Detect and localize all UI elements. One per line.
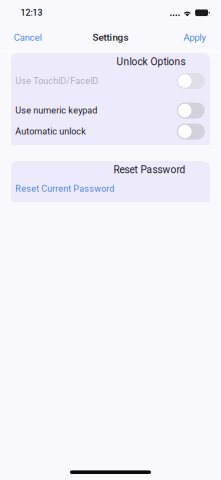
button[interactable]: Cancel: [9, 27, 47, 48]
button[interactable]: Automatic unlock: [11, 121, 210, 142]
staticText: Use TouchID/FaceID: [15, 76, 98, 86]
staticText: Unlock Options: [116, 56, 185, 68]
button[interactable]: Reset Current Password: [11, 178, 210, 199]
staticText: Reset Password: [113, 164, 185, 176]
button[interactable]: Use TouchID/FaceID: [11, 70, 210, 91]
staticText: Use numeric keypad: [15, 105, 97, 116]
staticText: Cancel: [14, 32, 42, 43]
staticText: Reset Current Password: [15, 183, 114, 194]
staticText: Automatic unlock: [15, 126, 86, 137]
button[interactable]: Use numeric keypad: [11, 100, 210, 121]
button[interactable]: Apply: [178, 27, 210, 48]
staticText: 12:13: [20, 8, 42, 18]
staticText: Apply: [183, 32, 205, 43]
staticText: Settings: [92, 32, 128, 43]
